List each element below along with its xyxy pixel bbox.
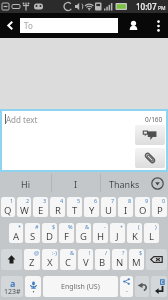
staticText: N xyxy=(116,256,124,269)
button[interactable]: 3 xyxy=(33,197,48,217)
staticText: ( xyxy=(138,223,140,230)
staticText: / xyxy=(105,249,108,256)
button[interactable]: 2 xyxy=(17,197,31,217)
staticText: B xyxy=(99,256,106,269)
button[interactable]: Voice input xyxy=(25,276,41,297)
button[interactable]: Shift xyxy=(1,249,22,270)
button[interactable]: 5 xyxy=(67,197,82,217)
button[interactable]: ? xyxy=(112,249,127,270)
staticText: $ xyxy=(52,223,56,230)
button[interactable]: 0 xyxy=(152,197,167,217)
staticText: G xyxy=(80,230,87,243)
button[interactable]: Attach file xyxy=(135,148,165,168)
staticText: :-) xyxy=(52,249,57,256)
button[interactable]: $ xyxy=(129,249,144,270)
button[interactable]: + xyxy=(110,223,125,243)
staticText: D xyxy=(46,230,53,243)
staticText: 4 xyxy=(60,197,64,204)
button[interactable]: Send message xyxy=(135,125,165,145)
staticText: - xyxy=(104,223,106,230)
staticText: S xyxy=(30,230,36,243)
staticText: a xyxy=(10,277,16,289)
staticText: P xyxy=(157,204,163,217)
button[interactable]: ! xyxy=(78,249,93,270)
button[interactable]: 6 xyxy=(84,197,99,217)
staticText: 0/160 xyxy=(145,115,163,124)
staticText: A xyxy=(13,230,20,243)
staticText: 6 xyxy=(94,197,98,204)
button[interactable]: ) xyxy=(144,223,159,243)
button[interactable]: Backspace xyxy=(146,249,167,270)
staticText: L xyxy=(149,230,154,243)
staticText: M xyxy=(132,256,141,269)
staticText: Z xyxy=(29,256,35,269)
staticText: T xyxy=(72,204,78,217)
button[interactable]: Contacts xyxy=(122,13,144,38)
staticText: Y xyxy=(89,204,95,217)
staticText: 8 xyxy=(128,197,132,204)
button[interactable]: Enter xyxy=(151,276,167,297)
button[interactable]: Hi xyxy=(0,172,51,194)
staticText: I xyxy=(124,204,128,217)
button[interactable]: # xyxy=(25,223,40,243)
button[interactable]: 8 xyxy=(118,197,133,217)
staticText: C xyxy=(65,256,72,269)
button[interactable]: $ xyxy=(42,223,57,243)
staticText: 1 xyxy=(10,197,14,204)
button[interactable]: 1 xyxy=(1,197,15,217)
button[interactable]: 7 xyxy=(101,197,116,217)
staticText: To xyxy=(24,20,33,31)
button[interactable]: English (US) xyxy=(43,276,118,297)
button[interactable]: More options xyxy=(148,13,168,38)
button[interactable]: Navigate up xyxy=(0,13,20,38)
button[interactable]: 9 xyxy=(135,197,150,217)
button[interactable]: & xyxy=(76,223,91,243)
staticText: O xyxy=(139,204,147,217)
staticText: K xyxy=(132,230,138,243)
button[interactable]: & xyxy=(60,249,76,270)
staticText: 5 xyxy=(77,197,81,204)
button[interactable]: I xyxy=(52,172,100,194)
staticText: . xyxy=(126,285,128,295)
staticText: $ xyxy=(139,249,143,256)
staticText: Add text xyxy=(6,114,38,125)
staticText: J xyxy=(116,230,119,243)
staticText: Q xyxy=(4,204,12,217)
staticText: PM xyxy=(158,5,166,12)
staticText: W xyxy=(20,204,29,217)
button[interactable]: Period xyxy=(120,276,133,297)
button[interactable]: / xyxy=(95,249,110,270)
staticText: & xyxy=(70,249,75,256)
button[interactable]: * xyxy=(9,223,23,243)
staticText: ) xyxy=(155,223,157,230)
button[interactable]: Show more suggestions xyxy=(147,172,168,194)
button[interactable]: 4 xyxy=(50,197,65,217)
button[interactable]: - xyxy=(93,223,108,243)
staticText: F xyxy=(64,230,69,243)
staticText: Hi xyxy=(21,178,30,190)
staticText: 9 xyxy=(145,197,149,204)
staticText: 0 xyxy=(162,197,166,204)
button[interactable]: :-) xyxy=(42,249,58,270)
staticText: Thanks xyxy=(109,178,140,190)
button[interactable]: Symbols keyboard xyxy=(1,276,23,297)
staticText: % xyxy=(68,223,73,230)
button[interactable]: Thanks xyxy=(101,172,147,194)
staticText: X xyxy=(47,256,53,269)
button[interactable]: @ xyxy=(24,249,40,270)
staticText: @ xyxy=(34,249,39,256)
staticText: 123# xyxy=(4,287,21,296)
button[interactable]: % xyxy=(59,223,74,243)
staticText: 2 xyxy=(26,197,30,204)
button[interactable]: ( xyxy=(127,223,142,243)
staticText: U xyxy=(105,204,112,217)
staticText: + xyxy=(120,223,124,230)
button[interactable]: Undo xyxy=(135,276,149,297)
staticText: English (US) xyxy=(61,282,100,292)
staticText: ? xyxy=(122,249,125,256)
staticText: 10:07 xyxy=(136,1,157,12)
staticText: # xyxy=(35,223,39,230)
button[interactable]: To xyxy=(20,18,118,33)
staticText: V xyxy=(83,256,89,269)
staticText: * xyxy=(18,223,22,230)
